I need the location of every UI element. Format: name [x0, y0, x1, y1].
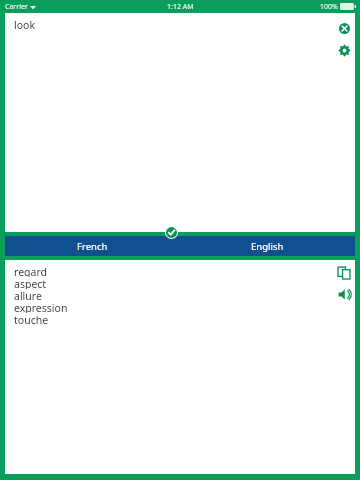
staticText: English: [251, 240, 284, 253]
staticText: 100%: [320, 2, 338, 12]
button[interactable]: Clear text: [333, 17, 355, 39]
button[interactable]: Copy: [333, 262, 355, 284]
staticText: allure: [14, 289, 42, 301]
staticText: Carrier: [5, 2, 28, 12]
button[interactable]: expression: [14, 301, 68, 313]
button[interactable]: Speak: [333, 283, 355, 305]
staticText: touche: [14, 313, 49, 325]
staticText: expression: [14, 301, 68, 313]
button[interactable]: regard: [14, 265, 47, 277]
button[interactable]: aspect: [14, 277, 47, 289]
button[interactable]: allure: [14, 289, 42, 301]
button[interactable]: Verified: [165, 226, 178, 239]
staticText: 1:12 AM: [167, 2, 194, 12]
staticText: look: [14, 18, 36, 32]
button[interactable]: English: [180, 236, 355, 256]
button[interactable]: Settings: [333, 39, 355, 61]
staticText: regard: [14, 265, 47, 277]
staticText: French: [77, 240, 108, 253]
button[interactable]: French: [5, 236, 180, 256]
staticText: aspect: [14, 277, 47, 289]
button[interactable]: touche: [14, 313, 49, 325]
